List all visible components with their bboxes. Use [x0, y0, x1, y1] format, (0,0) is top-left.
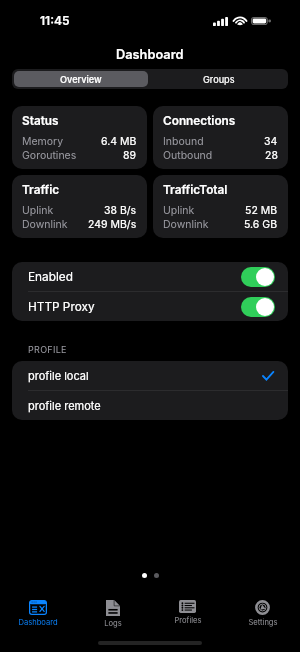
- staticText: Overview: [60, 74, 102, 85]
- staticText: 6.4 MB: [101, 135, 137, 148]
- button[interactable]: Enabled: [12, 262, 288, 291]
- staticText: Inbound: [163, 135, 204, 148]
- button[interactable]: HTTP Proxy: [12, 292, 288, 321]
- staticText: Profiles: [174, 616, 202, 625]
- staticText: Downlink: [163, 218, 209, 231]
- button[interactable]: Connections: [153, 106, 288, 169]
- staticText: Goroutines: [22, 149, 77, 162]
- staticText: 28: [265, 149, 278, 162]
- staticText: 34: [264, 135, 278, 148]
- staticText: Settings: [248, 618, 278, 627]
- button[interactable]: Logs: [75, 596, 150, 632]
- staticText: Groups: [203, 74, 235, 85]
- staticText: Connections: [163, 114, 236, 128]
- staticText: Downlink: [22, 218, 68, 231]
- button[interactable]: Dashboard: [0, 596, 75, 632]
- staticText: 5.6 GB: [244, 218, 278, 231]
- button[interactable]: Profiles: [150, 596, 225, 632]
- staticText: Outbound: [163, 149, 213, 162]
- staticText: Dashboard: [116, 47, 184, 62]
- button[interactable]: Status: [12, 106, 147, 169]
- other: HTTP Proxy toggle: [241, 297, 275, 317]
- staticText: PROFILE: [28, 344, 67, 355]
- staticText: 38 B/s: [104, 204, 137, 217]
- button[interactable]: Groups: [150, 69, 288, 89]
- staticText: HTTP Proxy: [28, 300, 95, 314]
- other: Enabled toggle: [241, 267, 275, 287]
- staticText: Enabled: [28, 270, 73, 284]
- button[interactable]: TrafficTotal: [153, 175, 288, 238]
- staticText: Status: [22, 114, 59, 128]
- staticText: Dashboard: [18, 618, 58, 627]
- button[interactable]: profile remote: [12, 391, 288, 420]
- staticText: Traffic: [22, 183, 60, 197]
- staticText: 52 MB: [245, 204, 278, 217]
- staticText: Logs: [104, 619, 122, 628]
- staticText: Uplink: [22, 204, 54, 217]
- button[interactable]: profile local: [12, 361, 288, 390]
- staticText: 89: [123, 149, 137, 162]
- staticText: TrafficTotal: [163, 183, 228, 197]
- button[interactable]: Overview: [14, 71, 148, 87]
- staticText: Memory: [22, 135, 64, 148]
- staticText: profile remote: [28, 399, 101, 412]
- staticText: 249 MB/s: [88, 218, 137, 231]
- staticText: 11:45: [40, 13, 70, 28]
- staticText: Uplink: [163, 204, 195, 217]
- button[interactable]: Settings: [225, 596, 300, 632]
- button[interactable]: Traffic: [12, 175, 147, 238]
- staticText: profile local: [28, 369, 89, 382]
